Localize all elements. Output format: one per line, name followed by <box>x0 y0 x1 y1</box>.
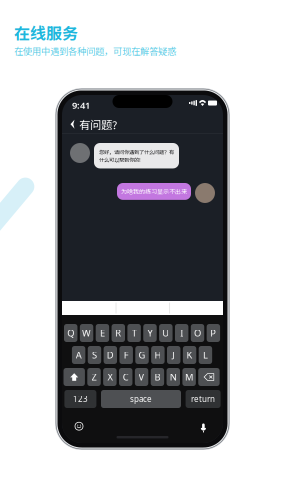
staticText: 为啥我的练习显示不出来 <box>121 187 187 196</box>
button[interactable]: X <box>103 368 117 386</box>
button[interactable]: Delete <box>198 368 220 386</box>
staticText: return <box>191 394 215 404</box>
staticText: R <box>115 327 121 339</box>
button[interactable]: 123 <box>64 390 96 408</box>
staticText: V <box>139 371 145 383</box>
button[interactable]: K <box>183 346 196 364</box>
button[interactable]: O <box>191 324 204 342</box>
staticText: 有问题? <box>79 116 117 132</box>
staticText: J <box>172 349 175 361</box>
staticText: E <box>100 327 105 339</box>
button[interactable]: L <box>199 346 212 364</box>
button[interactable]: G <box>135 346 149 364</box>
staticText: 在线服务 <box>14 21 78 44</box>
button[interactable]: D <box>104 346 117 364</box>
button[interactable]: S <box>88 346 101 364</box>
button[interactable]: J <box>167 346 180 364</box>
button[interactable]: I <box>175 324 188 342</box>
button[interactable]: B <box>151 368 164 386</box>
staticText: K <box>187 349 193 361</box>
staticText: 123 <box>73 394 88 404</box>
staticText: 您好，请问你遇到了什么问题？有 什么可以帮到你的! <box>99 148 174 163</box>
staticText: Q <box>67 327 74 339</box>
staticText: W <box>82 327 91 339</box>
button[interactable]: A <box>72 346 85 364</box>
button[interactable]: E <box>96 324 109 342</box>
button[interactable]: V <box>135 368 148 386</box>
staticText: D <box>107 349 114 361</box>
staticText: 在使用中遇到各种问题，可现在解答疑惑 <box>14 44 176 57</box>
staticText: Z <box>91 371 96 383</box>
staticText: G <box>138 349 145 361</box>
button[interactable]: F <box>119 346 133 364</box>
button[interactable]: C <box>119 368 132 386</box>
button[interactable]: P <box>207 324 220 342</box>
button[interactable]: Y <box>143 324 157 342</box>
button[interactable]: Shift <box>63 368 85 386</box>
staticText: S <box>92 349 97 361</box>
staticText: T <box>132 327 137 339</box>
staticText: X <box>107 371 112 383</box>
staticText: N <box>170 371 177 383</box>
staticText: U <box>162 327 169 339</box>
staticText: 9:41 <box>72 99 90 111</box>
staticText: O <box>194 327 201 339</box>
button[interactable]: N <box>166 368 180 386</box>
staticText: C <box>123 371 129 383</box>
button[interactable]: W <box>80 324 93 342</box>
staticText: F <box>124 349 129 361</box>
staticText: L <box>203 349 208 361</box>
button[interactable]: Dictate <box>201 422 206 430</box>
staticText: M <box>185 371 193 383</box>
staticText: B <box>154 371 160 383</box>
button[interactable]: return <box>186 390 221 408</box>
button[interactable]: Z <box>87 368 101 386</box>
button[interactable]: R <box>111 324 125 342</box>
button[interactable]: Q <box>64 324 77 342</box>
button[interactable]: Emoji <box>75 422 83 430</box>
button[interactable]: space <box>101 390 181 408</box>
button[interactable]: H <box>151 346 165 364</box>
staticText: H <box>154 349 161 361</box>
button[interactable]: U <box>159 324 172 342</box>
staticText: A <box>76 349 82 361</box>
staticText: P <box>210 327 216 339</box>
staticText: Y <box>147 327 152 339</box>
staticText: space <box>130 394 152 404</box>
staticText: I <box>180 327 183 339</box>
button[interactable]: M <box>182 368 196 386</box>
button[interactable]: T <box>127 324 141 342</box>
